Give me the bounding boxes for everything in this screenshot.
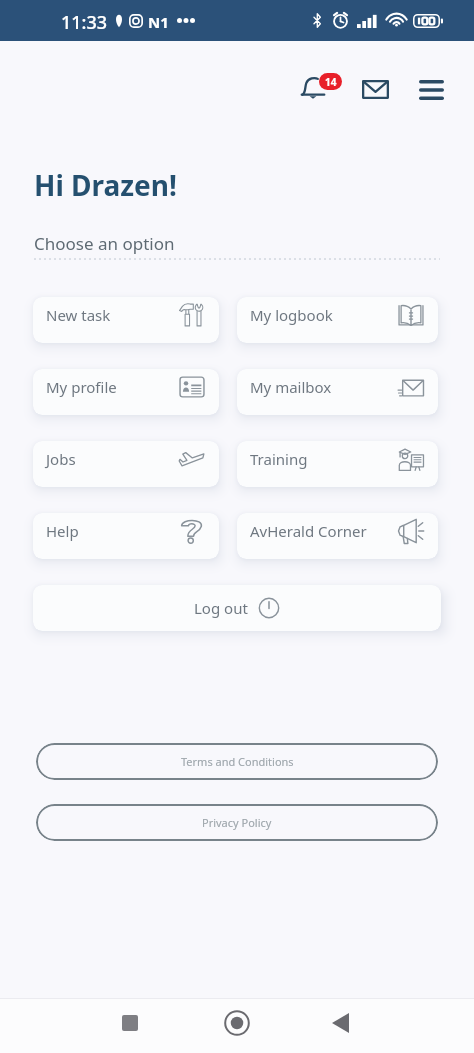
staticText: Hi Drazen!	[34, 166, 177, 204]
button[interactable]: New task	[33, 297, 219, 343]
staticText: Help	[46, 521, 79, 541]
button[interactable]: Help	[33, 513, 219, 559]
staticText: 11:33	[61, 10, 108, 35]
staticText: AvHerald Corner	[250, 521, 367, 541]
button[interactable]: My mailbox	[237, 369, 438, 415]
button[interactable]: Home	[213, 999, 261, 1047]
button[interactable]: Terms and Conditions	[36, 743, 438, 780]
button[interactable]: Notifications	[293, 68, 347, 102]
staticText: Terms and Conditions	[181, 754, 294, 769]
staticText: My mailbox	[250, 377, 332, 397]
staticText: Choose an option	[34, 232, 175, 255]
button[interactable]: Log out	[33, 585, 441, 631]
button[interactable]: Jobs	[33, 441, 219, 487]
staticText: New task	[46, 305, 111, 325]
staticText: My profile	[46, 377, 117, 397]
button[interactable]: AvHerald Corner	[237, 513, 438, 559]
button[interactable]: Menu	[409, 68, 453, 112]
staticText: My logbook	[250, 305, 333, 325]
staticText: 14	[325, 75, 337, 89]
staticText: Privacy Policy	[202, 815, 272, 830]
button[interactable]: Training	[237, 441, 438, 487]
staticText: Training	[250, 449, 308, 469]
button[interactable]: Recent apps	[106, 999, 154, 1047]
button[interactable]: Back	[316, 999, 364, 1047]
button[interactable]: My logbook	[237, 297, 438, 343]
staticText: Log out	[194, 598, 248, 618]
staticText: N1	[148, 12, 169, 32]
staticText: Jobs	[46, 449, 76, 469]
button[interactable]: Privacy Policy	[36, 804, 438, 841]
button[interactable]: My profile	[33, 369, 219, 415]
button[interactable]: Mail	[353, 67, 397, 111]
